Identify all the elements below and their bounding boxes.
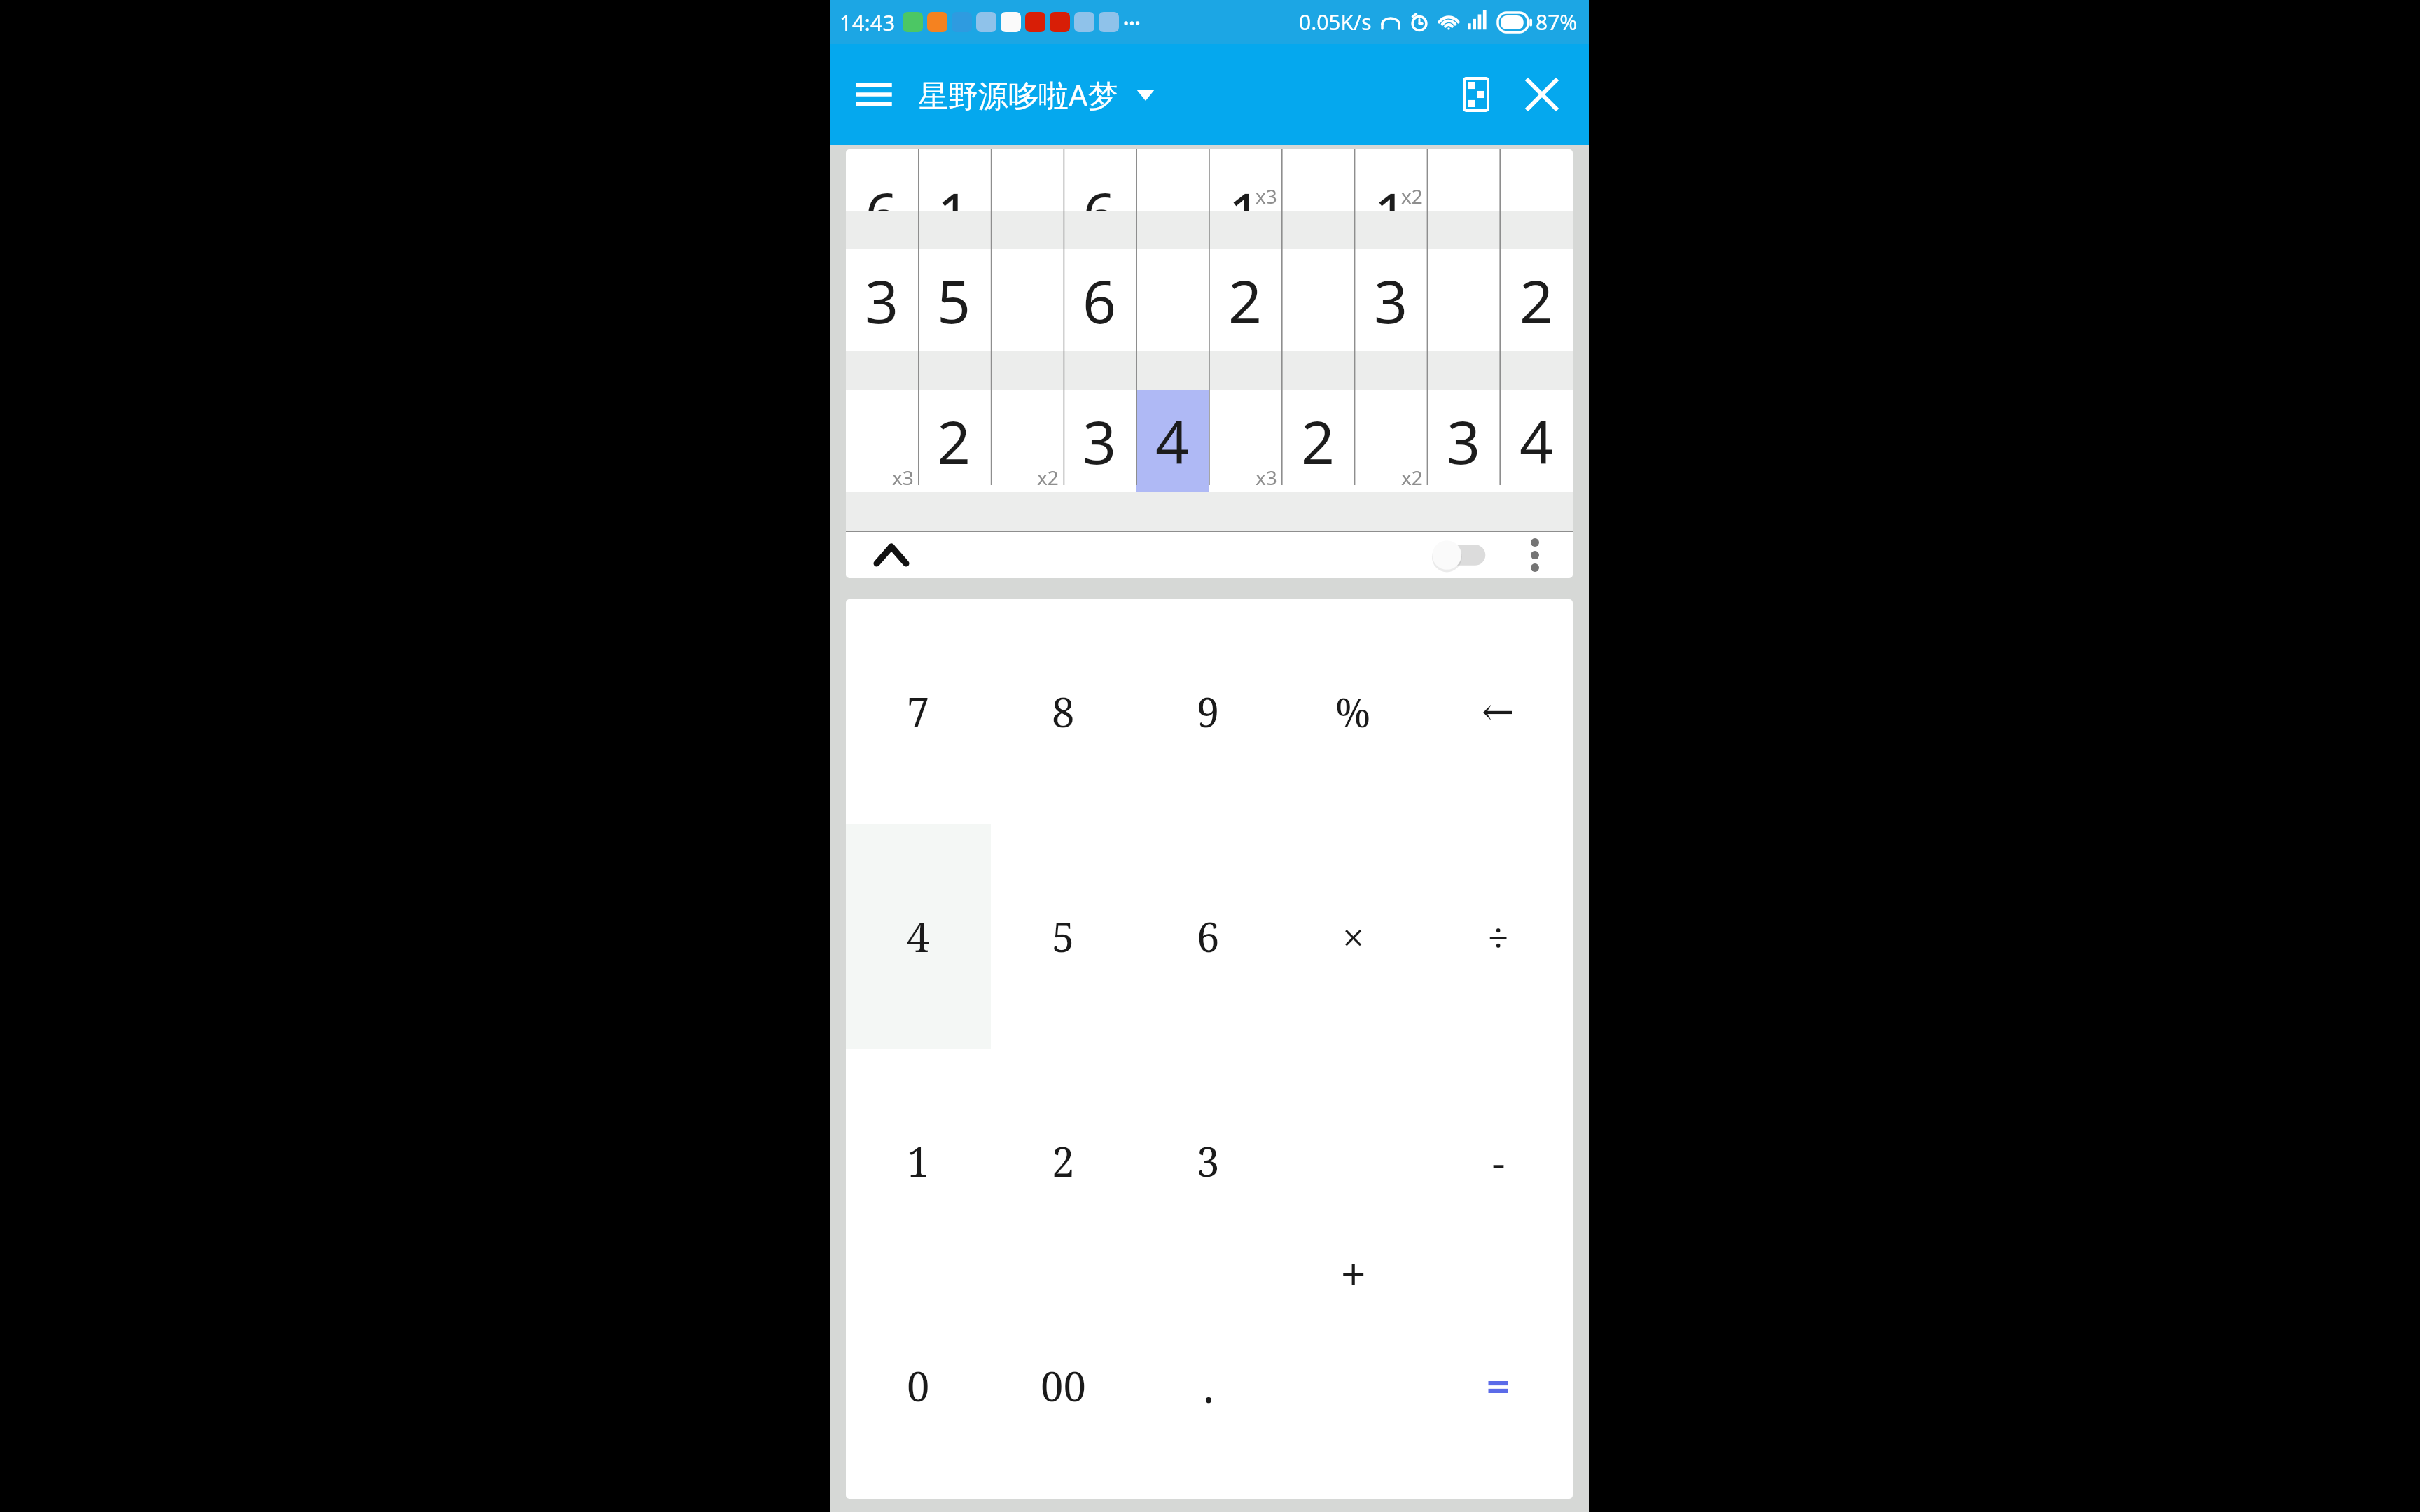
staticText: 00 xyxy=(1041,1358,1086,1413)
button[interactable]: × xyxy=(1281,824,1426,1049)
staticText: 星野源哆啦A梦 xyxy=(918,74,1118,115)
button[interactable] xyxy=(990,249,1063,351)
button[interactable]: x2 xyxy=(990,390,1063,492)
staticText: - xyxy=(1491,1132,1505,1191)
staticText: 1 xyxy=(1374,173,1408,234)
button[interactable]: 3 xyxy=(1136,1049,1281,1273)
button[interactable]: 2 xyxy=(1281,390,1354,492)
button[interactable]: 6 xyxy=(1063,249,1136,351)
button[interactable]: 3 xyxy=(1354,249,1427,351)
button[interactable]: x3 xyxy=(1209,390,1281,492)
button[interactable]: 9 xyxy=(1136,599,1281,824)
staticText: ← xyxy=(1482,689,1515,734)
button[interactable]: Layout xyxy=(1446,64,1506,125)
button[interactable]: Close xyxy=(1512,64,1572,125)
button[interactable]: Toggle xyxy=(1421,532,1498,578)
staticText: 1 xyxy=(907,1133,930,1189)
staticText: 2 xyxy=(1301,401,1335,481)
button[interactable]: 6 xyxy=(1136,824,1281,1049)
staticText: 2 xyxy=(937,401,971,481)
button[interactable] xyxy=(1281,149,1354,211)
staticText: x3 xyxy=(892,464,914,491)
staticText: x2 xyxy=(1037,464,1059,491)
button[interactable]: 2 xyxy=(1209,249,1281,351)
staticText: ••• xyxy=(1123,12,1141,33)
button[interactable]: 5 xyxy=(918,249,990,351)
button[interactable]: 00 xyxy=(991,1273,1136,1498)
staticText: 7 xyxy=(907,684,930,739)
button[interactable]: 5 xyxy=(991,824,1136,1049)
button[interactable]: 星野源哆啦A梦 xyxy=(911,69,1162,121)
staticText: + xyxy=(1341,1244,1366,1303)
staticText: 0 xyxy=(907,1358,930,1413)
button[interactable]: x2 xyxy=(1354,390,1427,492)
button[interactable]: Menu xyxy=(844,64,904,125)
staticText: 6 xyxy=(1197,909,1220,964)
button[interactable]: 8 xyxy=(991,599,1136,824)
button[interactable]: 0 xyxy=(846,1273,991,1498)
staticText: 3 xyxy=(1374,260,1408,340)
staticText: 4 xyxy=(907,909,930,964)
button[interactable]: 4 xyxy=(846,824,991,1049)
button[interactable]: 2 xyxy=(991,1049,1136,1273)
button[interactable]: % xyxy=(1281,599,1426,824)
button[interactable]: More options xyxy=(1510,532,1560,578)
button[interactable]: - xyxy=(1426,1049,1571,1498)
staticText: 5 xyxy=(937,260,971,340)
staticText: = xyxy=(1487,1358,1510,1413)
button[interactable] xyxy=(1427,249,1500,351)
staticText: 6 xyxy=(1083,173,1117,234)
button[interactable]: 2 xyxy=(1500,249,1573,351)
button[interactable]: 6 xyxy=(846,149,918,211)
staticText: ÷ xyxy=(1487,910,1510,963)
button[interactable]: = xyxy=(1426,1273,1571,1498)
button[interactable] xyxy=(1136,249,1209,351)
staticText: 3 xyxy=(1083,401,1117,481)
button[interactable]: 1 xyxy=(1354,149,1427,211)
staticText: 3 xyxy=(1197,1133,1220,1189)
staticText: x3 xyxy=(1256,464,1277,491)
staticText: 1 xyxy=(937,173,971,234)
staticText: 87% xyxy=(1536,8,1578,36)
button[interactable]: ÷ xyxy=(1426,824,1571,1049)
staticText: 2 xyxy=(1228,260,1263,340)
button[interactable]: 1 xyxy=(1209,149,1281,211)
staticText: 4 xyxy=(1155,401,1190,481)
staticText: 1 xyxy=(1228,173,1263,234)
button[interactable]: 6 xyxy=(1063,149,1136,211)
staticText: 5 xyxy=(1052,909,1075,964)
button[interactable]: 1 xyxy=(846,1049,991,1273)
button[interactable] xyxy=(1281,249,1354,351)
staticText: 14:43 xyxy=(840,8,896,37)
staticText: . xyxy=(1203,1355,1214,1416)
staticText: 0.05K/s xyxy=(1299,8,1372,36)
staticText: 4 xyxy=(1520,401,1554,481)
staticText: 6 xyxy=(865,173,899,234)
button[interactable]: + xyxy=(1281,1049,1426,1498)
button[interactable]: ← xyxy=(1426,599,1571,824)
button[interactable]: 7 xyxy=(846,599,991,824)
button[interactable] xyxy=(990,149,1063,211)
button[interactable]: 2 xyxy=(918,390,990,492)
button[interactable]: 4 xyxy=(1500,390,1573,492)
button[interactable]: 4 xyxy=(1136,390,1209,492)
staticText: 6 xyxy=(1083,260,1117,340)
button[interactable] xyxy=(1427,149,1500,211)
button[interactable] xyxy=(1136,149,1209,211)
staticText: % xyxy=(1335,685,1371,738)
button[interactable] xyxy=(1500,149,1573,211)
staticText: 3 xyxy=(1447,401,1481,481)
staticText: 9 xyxy=(1197,684,1220,739)
staticText: x2 xyxy=(1401,183,1423,209)
button[interactable]: x3 xyxy=(846,390,918,492)
button[interactable]: 1 xyxy=(918,149,990,211)
staticText: x2 xyxy=(1401,464,1423,491)
button[interactable]: Collapse xyxy=(861,532,922,578)
staticText: 2 xyxy=(1052,1133,1075,1189)
button[interactable]: . xyxy=(1136,1273,1281,1498)
staticText: 3 xyxy=(865,260,899,340)
button[interactable]: 3 xyxy=(1063,390,1136,492)
button[interactable]: 3 xyxy=(1427,390,1500,492)
button[interactable]: 3 xyxy=(846,249,918,351)
staticText: 2 xyxy=(1520,260,1554,340)
